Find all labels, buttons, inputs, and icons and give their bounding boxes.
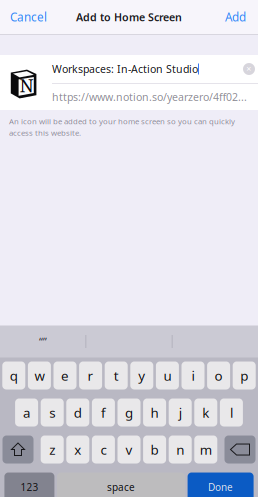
staticText: i	[191, 366, 194, 385]
staticText: “”	[39, 334, 47, 349]
staticText: r	[88, 366, 94, 385]
button[interactable]: m	[194, 435, 217, 463]
button[interactable]: x	[66, 435, 89, 463]
button[interactable]: Add	[217, 0, 258, 34]
button[interactable]: a	[15, 398, 38, 426]
button[interactable]: g	[117, 398, 140, 426]
staticText: access this website.	[9, 127, 81, 138]
staticText: Done	[208, 480, 233, 494]
button[interactable]: 123	[4, 472, 54, 497]
button[interactable]: space	[57, 472, 185, 497]
button[interactable]: Delete	[224, 435, 255, 463]
button[interactable]: f	[92, 398, 115, 426]
button[interactable]: y	[130, 361, 153, 389]
staticText: k	[202, 403, 209, 422]
staticText: t	[114, 366, 119, 385]
staticText: z	[49, 440, 55, 459]
staticText: space	[107, 480, 135, 494]
button[interactable]: l	[220, 398, 243, 426]
button[interactable]: c	[92, 435, 115, 463]
staticText: Add	[225, 9, 246, 25]
staticText: Cancel	[10, 9, 47, 25]
staticText: q	[10, 366, 18, 385]
button[interactable]: w	[28, 361, 51, 389]
staticText: n	[176, 440, 184, 459]
button[interactable]: Done	[188, 472, 254, 497]
staticText: e	[61, 366, 69, 385]
button[interactable]: t	[105, 361, 128, 389]
button[interactable]: “”	[0, 325, 86, 357]
button[interactable]: z	[41, 435, 64, 463]
button[interactable]: j	[169, 398, 192, 426]
button[interactable]: n	[169, 435, 192, 463]
staticText: c	[100, 440, 106, 459]
staticText: 123	[20, 480, 38, 494]
staticText: An icon will be added to your home scree…	[9, 116, 235, 126]
staticText: p	[240, 366, 248, 385]
button[interactable]: k	[194, 398, 217, 426]
staticText: w	[34, 366, 44, 385]
button[interactable]: s	[41, 398, 64, 426]
staticText: a	[23, 403, 30, 422]
staticText: d	[74, 403, 82, 422]
staticText: x	[74, 440, 81, 459]
staticText: u	[163, 366, 171, 385]
button[interactable]: b	[143, 435, 166, 463]
staticText: Add to Home Screen	[76, 10, 182, 24]
button[interactable]: Shift	[2, 435, 33, 463]
staticText: v	[125, 440, 132, 459]
staticText: h	[151, 403, 159, 422]
staticText: g	[125, 403, 133, 422]
button[interactable]: d	[66, 398, 89, 426]
staticText: j	[179, 403, 182, 422]
button[interactable]: Cancel	[0, 0, 55, 34]
staticText: https://www.notion.so/yearzero/4ff02...	[52, 90, 247, 104]
button[interactable]: i	[181, 361, 204, 389]
button[interactable]: Clear text	[240, 59, 258, 79]
staticText: ✕	[246, 65, 252, 73]
button[interactable]: v	[117, 435, 140, 463]
button[interactable]: e	[53, 361, 76, 389]
staticText: Workspaces: In-Action Studio	[52, 62, 198, 76]
button[interactable]: r	[79, 361, 102, 389]
button[interactable]: o	[207, 361, 230, 389]
button[interactable]: q	[2, 361, 25, 389]
button[interactable]: p	[233, 361, 256, 389]
staticText: N	[19, 72, 33, 98]
staticText: l	[230, 403, 233, 422]
staticText: m	[200, 440, 212, 459]
staticText: y	[138, 366, 145, 385]
button[interactable]: u	[156, 361, 179, 389]
staticText: b	[151, 440, 159, 459]
button[interactable]: h	[143, 398, 166, 426]
staticText: o	[215, 366, 223, 385]
staticText: s	[49, 403, 55, 422]
staticText: f	[101, 403, 106, 422]
